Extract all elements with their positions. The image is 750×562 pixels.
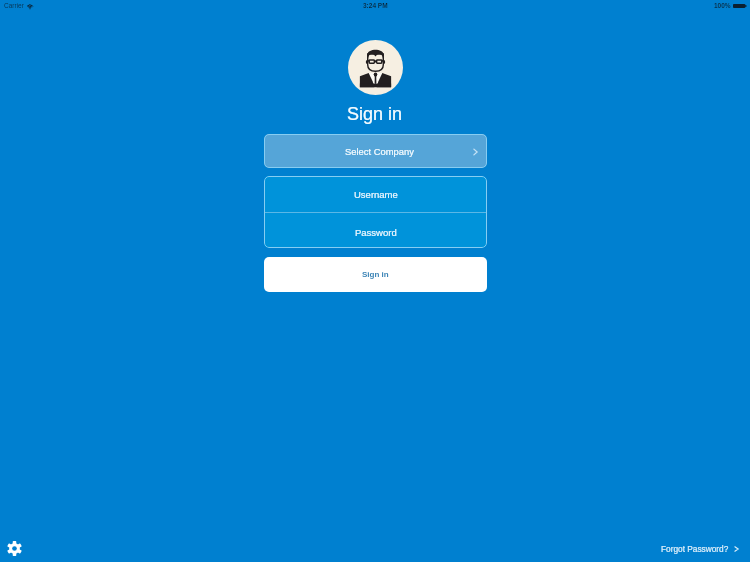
staticText: Sign in	[347, 104, 403, 124]
staticText: Select Company	[345, 146, 414, 157]
staticText: Forgot Password?	[661, 544, 729, 553]
staticText: Sign in	[362, 270, 389, 279]
button[interactable]: Forgot Password?	[661, 544, 739, 553]
button[interactable]: Username	[264, 176, 487, 212]
staticText: Password	[355, 227, 397, 238]
staticText: Username	[354, 189, 398, 200]
button[interactable]: Settings	[7, 541, 22, 556]
staticText: 3:24 PM	[363, 2, 388, 9]
button[interactable]: Sign in	[264, 257, 487, 292]
button[interactable]: Select Company	[264, 134, 487, 168]
button[interactable]: Password	[264, 213, 487, 248]
staticText: Carrier	[4, 2, 24, 9]
staticText: 100%	[714, 2, 731, 9]
